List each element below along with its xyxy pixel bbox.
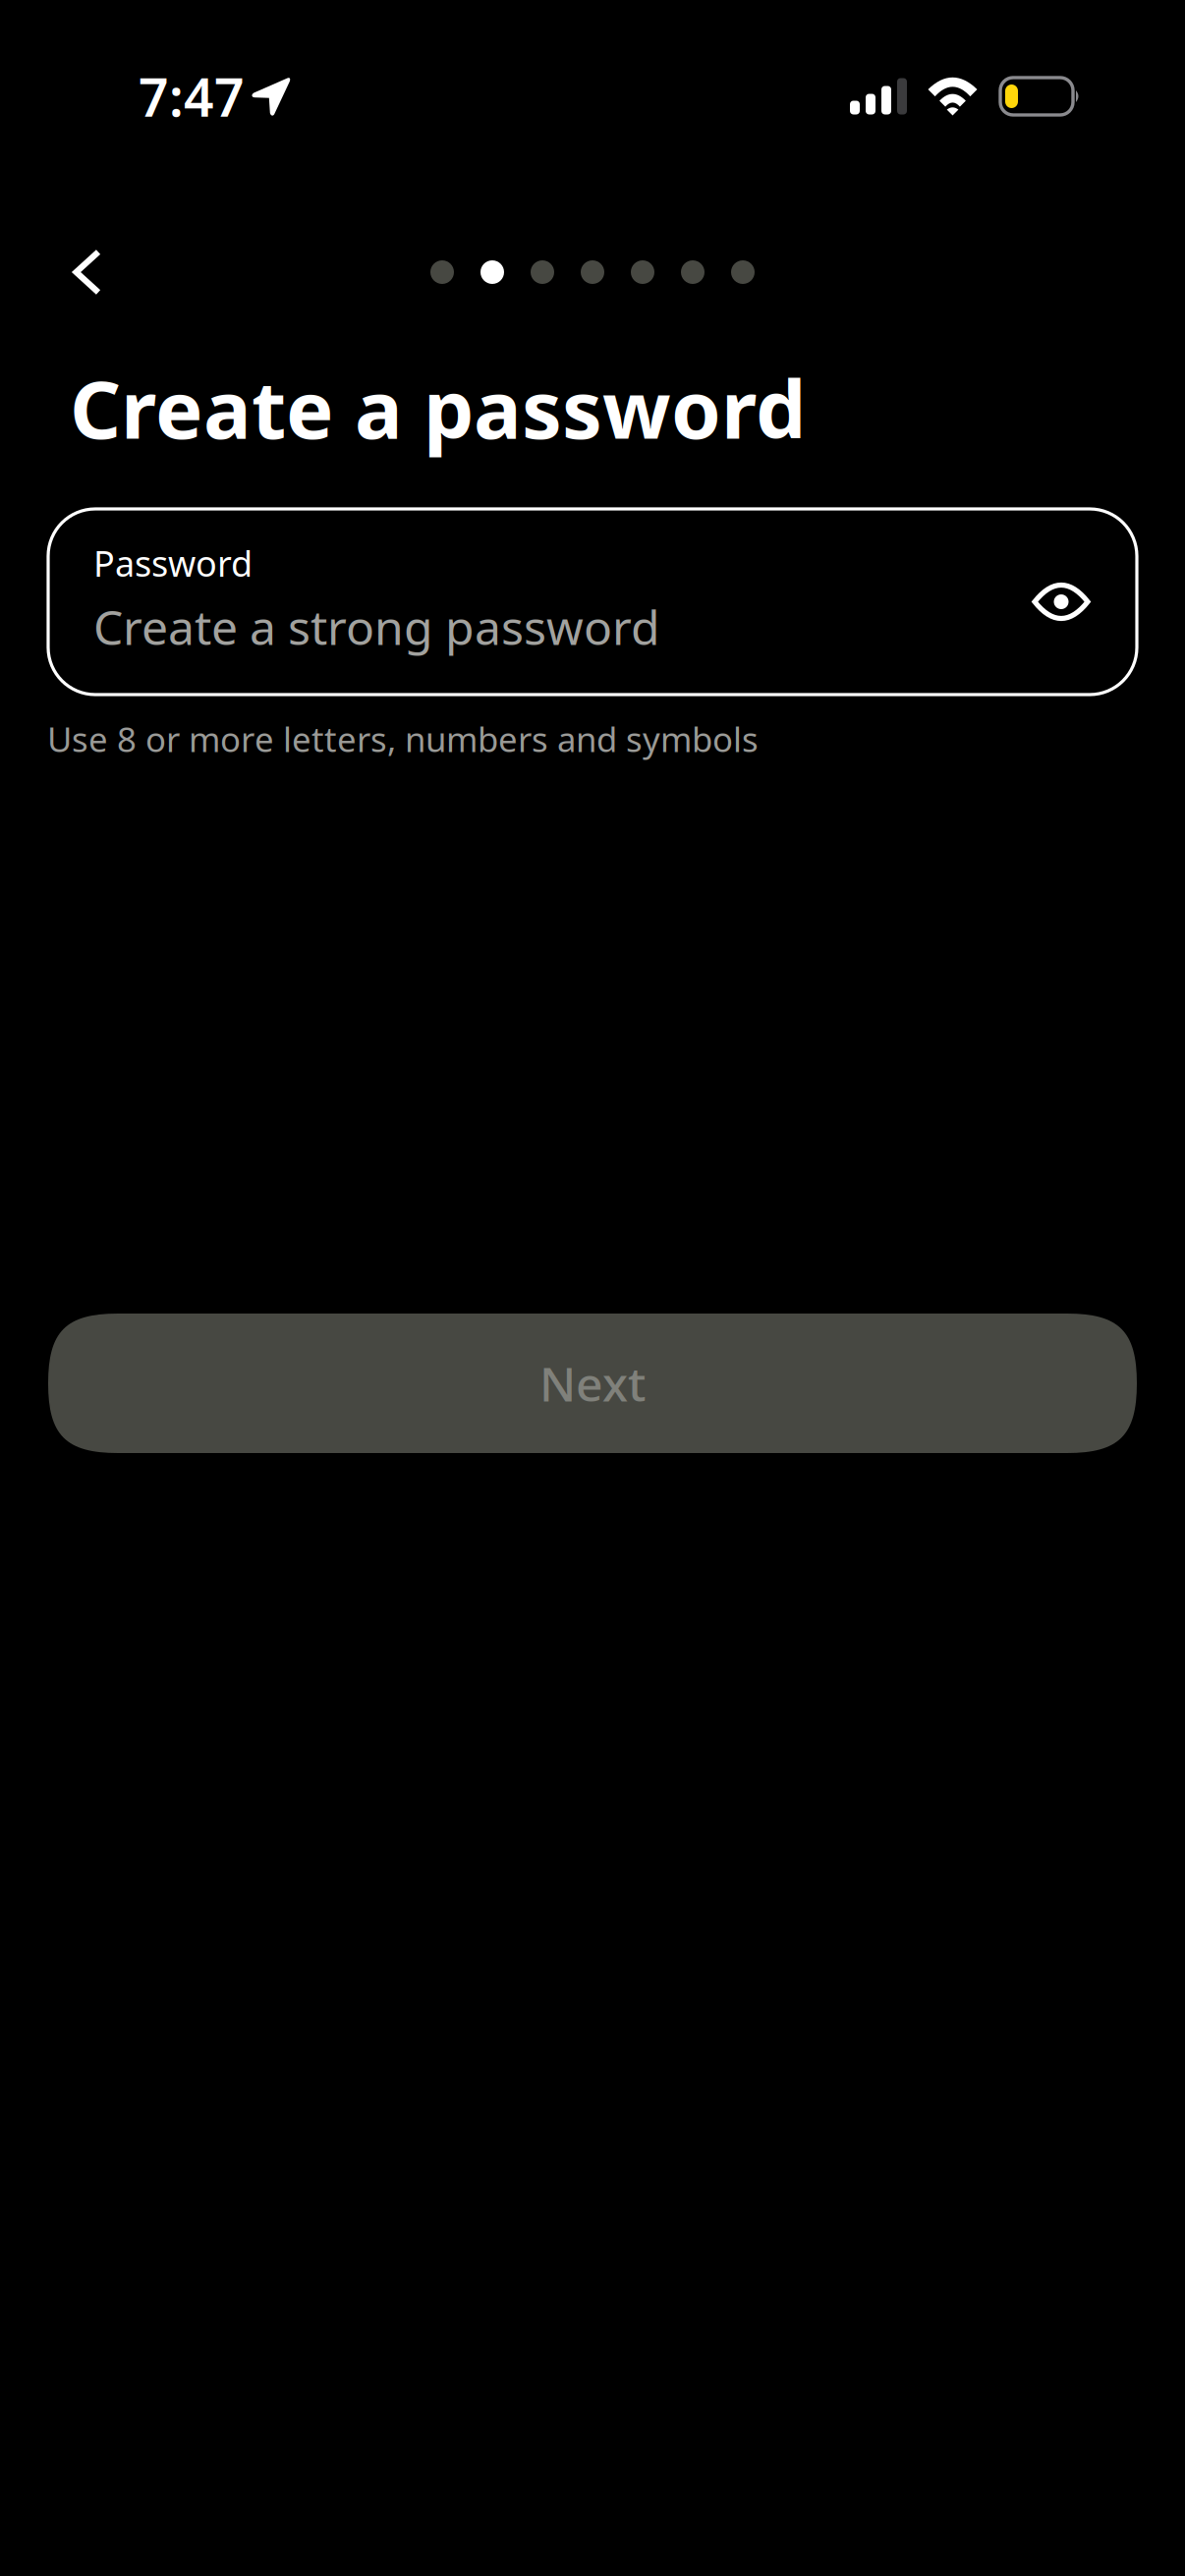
staticText: 7:47 (139, 62, 245, 131)
button[interactable]: Back (40, 225, 135, 319)
button[interactable]: Show password (1012, 553, 1110, 651)
staticText: Password (93, 540, 253, 587)
button[interactable]: Next (48, 1314, 1137, 1453)
staticText: Create a password (70, 355, 806, 461)
button[interactable]: Password (48, 509, 1012, 695)
staticText: Create a strong password (93, 595, 660, 658)
staticText: Next (539, 1352, 646, 1415)
staticText: Use 8 or more letters, numbers and symbo… (47, 716, 759, 761)
